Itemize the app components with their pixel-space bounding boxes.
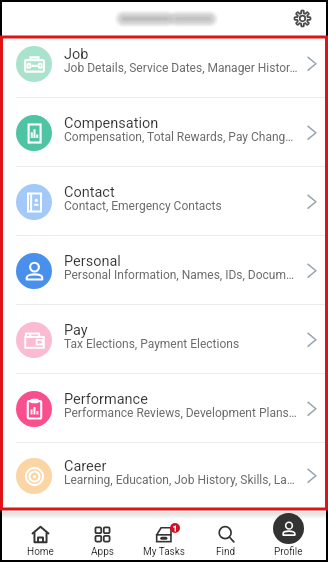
button[interactable]: Performance (2, 374, 326, 442)
staticText: Apps (91, 546, 114, 558)
staticText: Home (27, 546, 54, 558)
button[interactable]: Career (2, 443, 326, 507)
button[interactable]: Job (2, 34, 326, 97)
button[interactable]: Home (9, 519, 71, 560)
staticText: Performance (64, 391, 148, 408)
staticText: Compensation (64, 115, 159, 132)
staticText: Performance Reviews, Development Plans… (64, 406, 297, 420)
staticText: Profile (274, 546, 303, 558)
staticText: Personal Information, Names, IDs, Docum… (64, 268, 295, 282)
button[interactable]: Personal (2, 236, 326, 304)
button[interactable]: Settings (289, 5, 315, 31)
staticText: My Tasks (143, 546, 185, 558)
button[interactable]: Apps (71, 519, 133, 560)
staticText: Pay (64, 322, 88, 339)
staticText: Compensation, Total Rewards, Pay Chang… (64, 130, 294, 144)
staticText: 1 (173, 524, 178, 533)
staticText: Job (64, 46, 89, 63)
staticText: Tax Elections, Payment Elections (64, 337, 240, 351)
staticText: Personal (64, 253, 121, 270)
staticText: Contact, Emergency Contacts (64, 199, 222, 213)
staticText: Contact (64, 184, 115, 201)
staticText: Find (216, 546, 236, 558)
button[interactable]: Find (195, 519, 257, 560)
button[interactable]: Profile (257, 519, 319, 560)
button[interactable]: Contact (2, 167, 326, 235)
staticText: Learning, Education, Job History, Skills… (64, 473, 295, 487)
staticText: Career (64, 458, 107, 475)
button[interactable]: 1 (133, 519, 195, 560)
staticText: Job Details, Service Dates, Manager Hist… (64, 61, 298, 75)
button[interactable]: Compensation (2, 98, 326, 166)
button[interactable]: Pay (2, 305, 326, 373)
